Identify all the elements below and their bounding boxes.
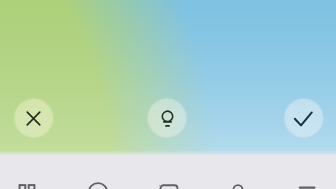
button[interactable]: Apps: [10, 156, 44, 189]
button[interactable]: Explore: [81, 156, 115, 189]
button[interactable]: More: [291, 156, 325, 189]
button[interactable]: Profile: [221, 156, 255, 189]
button[interactable]: Ideas: [148, 99, 187, 138]
button[interactable]: Dismiss: [14, 99, 53, 138]
button[interactable]: Accept: [284, 99, 323, 138]
button[interactable]: Library: [151, 156, 185, 189]
